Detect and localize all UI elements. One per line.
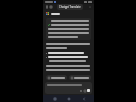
button[interactable]: New chat	[49, 5, 53, 9]
button[interactable]: Attach	[79, 89, 82, 92]
button[interactable]: More options	[88, 5, 92, 9]
button[interactable]	[46, 75, 67, 80]
button[interactable]: Recent apps	[51, 95, 58, 102]
button[interactable]: Menu	[45, 5, 49, 9]
button[interactable]: Send	[87, 89, 90, 92]
button[interactable]: Attach	[45, 82, 92, 94]
button[interactable]: Chatgpt Translate	[57, 4, 83, 10]
button[interactable]: Home	[65, 95, 72, 102]
button[interactable]: Voice input	[83, 89, 86, 92]
button[interactable]: Back	[80, 95, 87, 102]
staticText: Chatgpt Translate	[59, 5, 81, 9]
button[interactable]	[69, 75, 91, 80]
